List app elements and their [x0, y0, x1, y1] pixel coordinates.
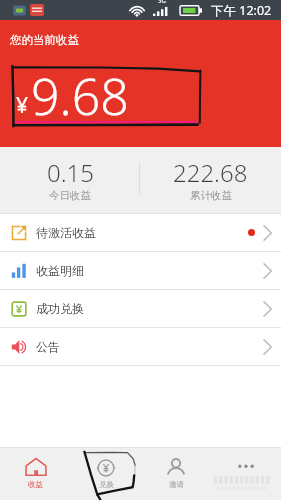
button[interactable]: 邀请 — [141, 448, 211, 500]
staticText: 今日收益 — [49, 189, 91, 202]
staticText: 累计收益 — [190, 189, 232, 202]
button[interactable]: 更多 — [211, 448, 281, 500]
button[interactable]: 收益 — [0, 448, 71, 500]
staticText: ¥ — [16, 91, 29, 120]
staticText: 0.15 — [47, 156, 94, 189]
staticText: 下午 12:02 — [211, 2, 272, 19]
button[interactable]: 0.15 — [0, 147, 140, 202]
button[interactable]: 公告 — [0, 328, 281, 365]
button[interactable]: 收益明细 — [0, 252, 281, 289]
staticText: 待激活收益 — [36, 225, 96, 240]
staticText: 兑换 — [99, 480, 114, 489]
staticText: 3G — [158, 0, 166, 5]
button[interactable]: 兑换 — [71, 448, 141, 500]
staticText: 成功兑换 — [36, 301, 84, 316]
staticText: 9.68 — [31, 62, 129, 130]
button[interactable]: 222.68 — [140, 147, 281, 202]
staticText: 收益 — [28, 480, 43, 489]
button[interactable]: 待激活收益 — [0, 214, 281, 251]
staticText: 公告 — [36, 339, 60, 354]
staticText: 收益明细 — [36, 263, 84, 278]
staticText: 您的当前收益 — [10, 33, 79, 47]
staticText: 邀请 — [169, 480, 184, 489]
button[interactable]: 成功兑换 — [0, 290, 281, 327]
staticText: 222.68 — [173, 156, 248, 189]
